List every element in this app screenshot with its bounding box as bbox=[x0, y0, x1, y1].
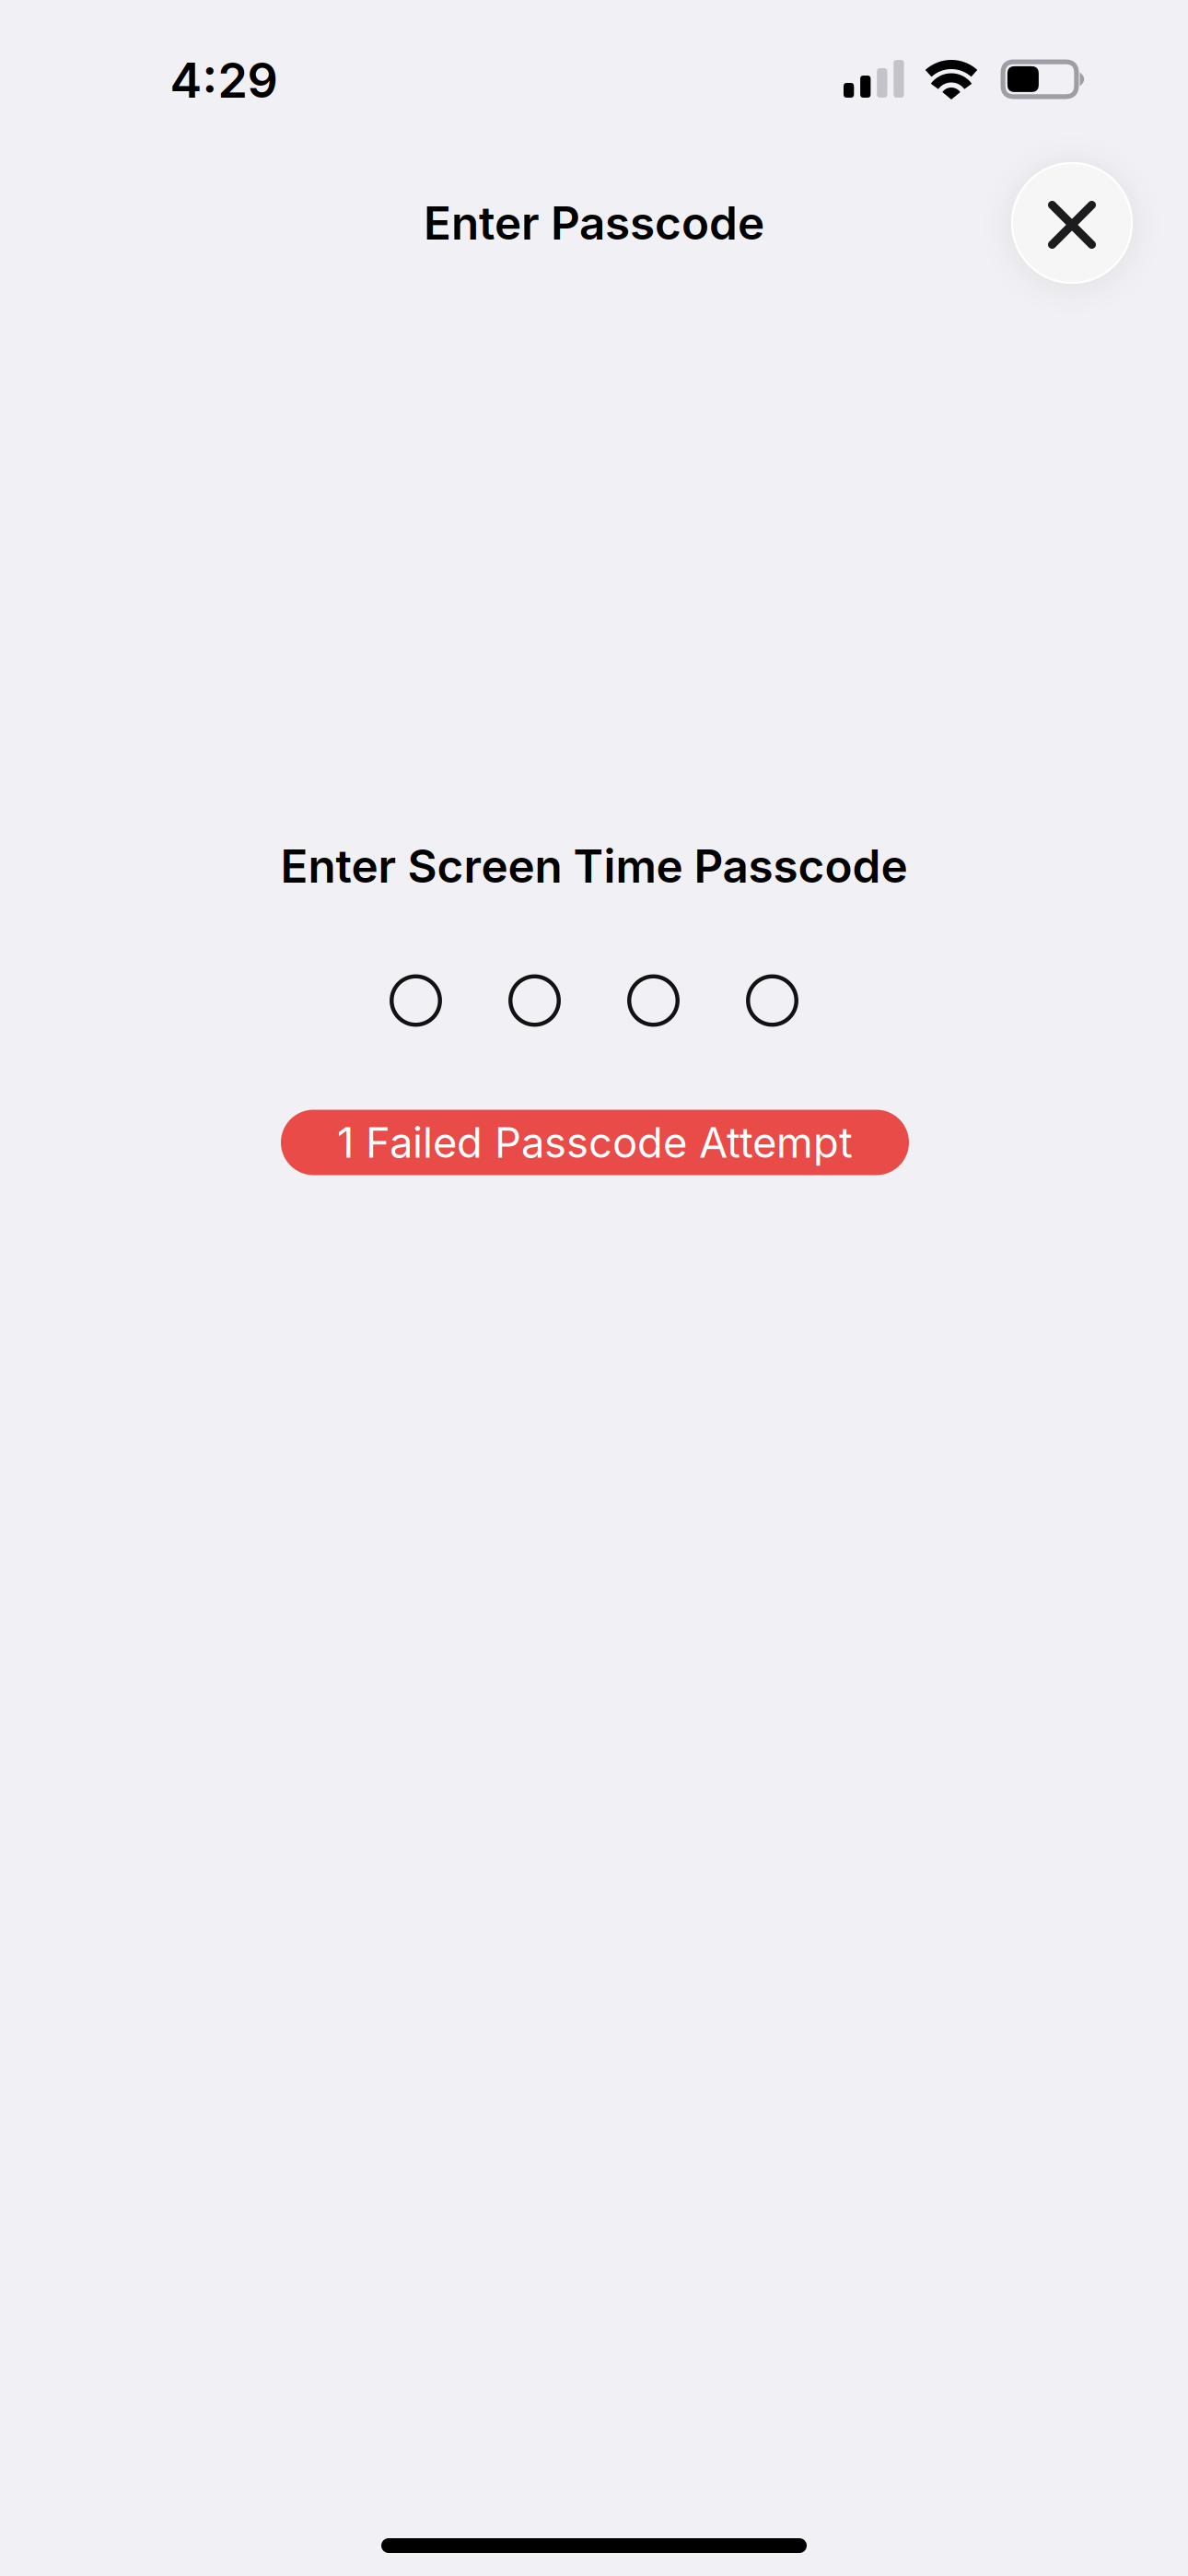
staticText: 1 Failed Passcode Attempt bbox=[337, 1117, 853, 1168]
staticText: Enter Screen Time Passcode bbox=[280, 839, 908, 894]
button[interactable]: Close bbox=[1011, 162, 1133, 284]
staticText: Enter Passcode bbox=[424, 196, 764, 251]
staticText: 4:29 bbox=[170, 51, 278, 109]
